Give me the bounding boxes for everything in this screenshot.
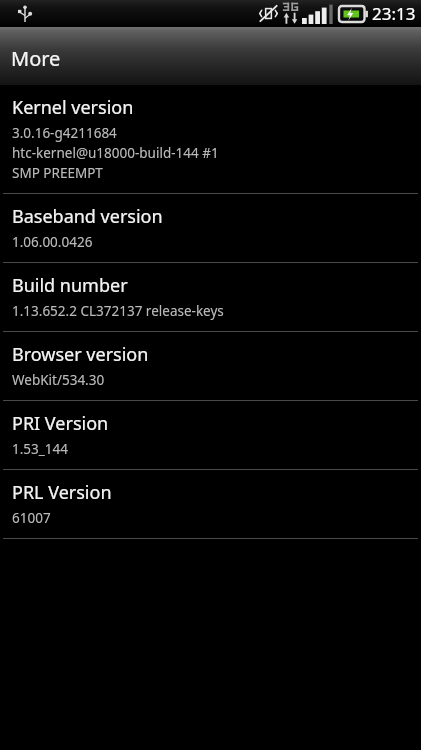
staticText: Build number	[12, 273, 128, 298]
button[interactable]: Baseband version	[0, 194, 421, 262]
staticText: htc-kernel@u18000-build-144 #1	[12, 144, 219, 162]
staticText: 61007	[12, 509, 51, 527]
button[interactable]: Browser version	[0, 332, 421, 400]
staticText: PRL Version	[12, 480, 112, 505]
staticText: WebKit/534.30	[12, 371, 105, 389]
staticText: 1.13.652.2 CL372137 release-keys	[12, 302, 224, 320]
staticText: SMP PREEMPT	[12, 164, 103, 182]
button[interactable]: Kernel version	[0, 85, 421, 193]
staticText: 3.0.16-g4211684	[12, 124, 117, 142]
button[interactable]: PRL Version	[0, 470, 421, 538]
other: USB connected	[18, 5, 32, 23]
button[interactable]: Build number	[0, 263, 421, 331]
staticText: 1.53_144	[12, 440, 68, 458]
staticText: 1.06.00.0426	[12, 233, 93, 251]
staticText: Kernel version	[12, 95, 134, 120]
button[interactable]: PRI Version	[0, 401, 421, 469]
staticText: More	[11, 45, 61, 72]
staticText: Browser version	[12, 342, 149, 367]
staticText: 23:13	[372, 2, 416, 25]
staticText: Baseband version	[12, 204, 163, 229]
staticText: PRI Version	[12, 411, 109, 436]
